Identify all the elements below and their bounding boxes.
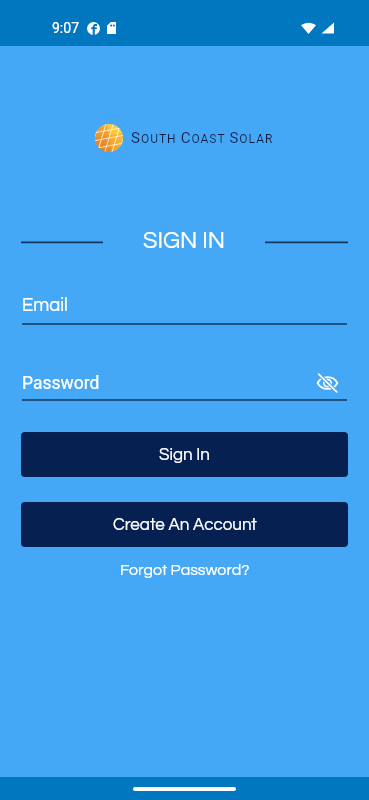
staticText: SIGN IN <box>143 229 226 249</box>
staticText: Sign In <box>159 446 210 464</box>
staticText: SOUTH COAST SOLAR <box>131 129 274 147</box>
staticText: 9:07 <box>52 20 79 36</box>
button[interactable]: Password <box>22 371 347 401</box>
button[interactable]: Forgot Password? <box>120 562 250 578</box>
staticText: Create An Account <box>113 516 257 534</box>
staticText: Password <box>22 373 317 394</box>
button[interactable]: Show password <box>317 371 347 395</box>
button[interactable]: Sign In <box>21 432 348 477</box>
button[interactable]: Create An Account <box>21 502 348 547</box>
staticText: Email <box>22 296 347 315</box>
button[interactable]: Email <box>22 296 347 325</box>
